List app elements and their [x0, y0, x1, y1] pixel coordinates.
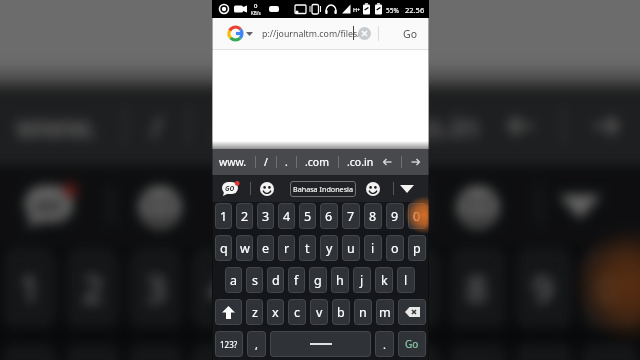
button[interactable]: h — [331, 267, 349, 293]
button[interactable]: m — [376, 299, 394, 325]
button[interactable] — [400, 185, 414, 193]
button[interactable] — [457, 186, 499, 228]
button[interactable]: a — [225, 267, 242, 293]
button[interactable]: .co.in — [400, 105, 481, 147]
button[interactable]: 8 — [451, 249, 505, 327]
button[interactable]: v — [310, 299, 328, 325]
button[interactable] — [383, 158, 392, 166]
button[interactable]: x — [267, 299, 284, 325]
button[interactable]: . — [214, 105, 223, 147]
button[interactable]: 1 — [4, 249, 55, 327]
button[interactable]: 1 — [215, 203, 232, 229]
staticText: u — [347, 240, 355, 257]
button[interactable]: y — [320, 235, 338, 261]
button[interactable] — [508, 114, 535, 138]
staticText: g — [314, 272, 322, 289]
button[interactable]: u — [385, 345, 439, 360]
button[interactable] — [559, 195, 601, 219]
button[interactable]: , — [247, 331, 266, 357]
button[interactable]: Bahasa Indonesia — [229, 183, 427, 231]
button[interactable]: b — [332, 299, 350, 325]
button[interactable]: g — [309, 267, 327, 293]
button[interactable]: s — [246, 267, 263, 293]
button[interactable]: / — [264, 155, 268, 169]
button[interactable]: t — [299, 235, 316, 261]
button[interactable]: j — [353, 267, 371, 293]
button[interactable]: i — [364, 235, 382, 261]
button[interactable] — [592, 114, 619, 138]
staticText: KB/s — [251, 10, 261, 16]
staticText: 22.56 — [405, 5, 425, 15]
button[interactable]: u — [342, 235, 360, 261]
button[interactable]: r — [193, 345, 244, 360]
button[interactable]: GO — [222, 181, 240, 196]
button[interactable]: 5 — [299, 203, 316, 229]
button[interactable]: / — [151, 105, 163, 147]
button[interactable]: t — [256, 345, 307, 360]
button[interactable]: Go — [392, 18, 428, 49]
button[interactable]: q — [215, 235, 232, 261]
button[interactable]: 6 — [320, 203, 338, 229]
button[interactable] — [270, 331, 371, 357]
staticText: s — [252, 272, 258, 289]
button[interactable]: y — [319, 345, 373, 360]
button[interactable]: z — [246, 299, 263, 325]
button[interactable]: .co.in — [347, 155, 374, 169]
button[interactable]: d — [267, 267, 284, 293]
button[interactable]: w — [236, 235, 253, 261]
button[interactable]: 6 — [319, 249, 373, 327]
button[interactable]: c — [288, 299, 306, 325]
button[interactable]: .com — [274, 105, 349, 147]
button[interactable]: n — [354, 299, 372, 325]
button[interactable] — [139, 186, 181, 228]
button[interactable]: f — [288, 267, 305, 293]
button[interactable]: Go — [398, 331, 426, 357]
button[interactable]: www. — [219, 155, 247, 169]
button[interactable]: r — [278, 235, 295, 261]
button[interactable]: 3 — [257, 203, 274, 229]
button[interactable]: GO — [25, 183, 79, 228]
button[interactable]: 123? — [215, 331, 243, 357]
button[interactable]: www. — [16, 105, 100, 147]
staticText: 4 — [208, 264, 232, 315]
button[interactable]: p — [408, 235, 426, 261]
button[interactable]: 7 — [385, 249, 439, 327]
button[interactable]: . — [285, 155, 288, 169]
button[interactable]: 4 — [193, 249, 244, 327]
button[interactable]: Bahasa Indonesia — [290, 181, 356, 197]
button[interactable]: . — [375, 331, 394, 357]
button[interactable]: e — [257, 235, 274, 261]
button[interactable]: 2 — [236, 203, 253, 229]
button[interactable]: l — [397, 267, 415, 293]
button[interactable]: 8 — [364, 203, 382, 229]
button[interactable]: 0 — [408, 203, 426, 229]
button[interactable]: 4 — [278, 203, 295, 229]
button[interactable] — [366, 182, 380, 196]
button[interactable]: 9 — [517, 249, 571, 327]
button[interactable]: 7 — [342, 203, 360, 229]
button[interactable] — [398, 299, 426, 325]
button[interactable]: 9 — [386, 203, 404, 229]
button[interactable]: .com — [305, 155, 330, 169]
button[interactable]: o — [386, 235, 404, 261]
staticText: 8 — [466, 264, 490, 315]
staticText: . — [383, 337, 386, 352]
button[interactable]: p://journaltm.com/files/ — [212, 18, 429, 49]
staticText: 6 — [334, 264, 358, 315]
button[interactable]: 3 — [130, 249, 181, 327]
button[interactable] — [358, 27, 371, 40]
button[interactable]: 5 — [256, 249, 307, 327]
staticText: 55% — [386, 6, 399, 15]
button[interactable]: k — [375, 267, 393, 293]
button[interactable] — [215, 299, 242, 325]
button[interactable] — [260, 182, 274, 196]
button[interactable]: 0 — [583, 249, 637, 327]
button[interactable] — [411, 158, 420, 166]
button[interactable]: 2 — [67, 249, 118, 327]
